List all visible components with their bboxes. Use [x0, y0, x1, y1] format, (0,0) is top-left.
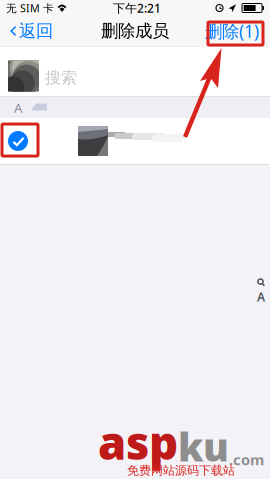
staticText: 删除(1) — [205, 19, 259, 42]
staticText: A — [257, 289, 265, 305]
staticText: 无 SIM 卡 — [6, 1, 54, 15]
staticText: 返回 — [19, 20, 53, 42]
staticText: A — [14, 99, 23, 116]
button[interactable]: 搜索 — [0, 46, 270, 96]
staticText: 下午2:21 — [113, 0, 161, 16]
staticText: ku — [178, 421, 229, 472]
staticText: 删除成员 — [101, 20, 169, 42]
button[interactable]: 删除(1) — [197, 16, 270, 46]
staticText: 免费网站源码下载站 — [127, 463, 235, 478]
staticText: asp — [98, 412, 178, 472]
staticText: .com — [229, 450, 264, 469]
button[interactable]: Section index — [254, 278, 268, 305]
button[interactable]: 返回 — [0, 16, 61, 46]
button[interactable] — [0, 118, 270, 164]
staticText: 搜索 — [45, 68, 77, 87]
